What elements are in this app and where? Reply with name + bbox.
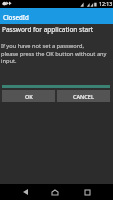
staticText: If you have not set a password, please p… <box>1 42 107 64</box>
staticText: CANCEL <box>73 93 94 100</box>
button[interactable]: Recent apps <box>77 184 97 200</box>
staticText: OK <box>25 93 33 100</box>
staticText: ClosedId <box>3 13 29 21</box>
button[interactable]: CANCEL <box>57 90 110 102</box>
staticText: 12:13 <box>99 0 113 7</box>
staticText: Password for application start <box>2 25 94 34</box>
button[interactable]: Home <box>45 184 65 200</box>
button[interactable]: OK <box>2 90 55 102</box>
button[interactable]: Back <box>15 184 35 200</box>
